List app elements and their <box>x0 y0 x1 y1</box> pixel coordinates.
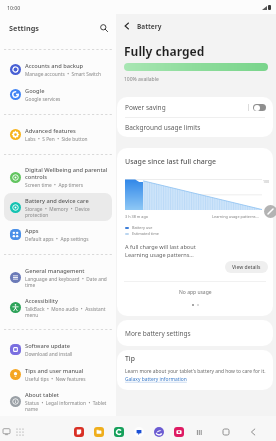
staticText: Battery <box>137 22 162 31</box>
staticText: Google services <box>25 96 61 103</box>
staticText: Software update <box>25 342 71 350</box>
button[interactable]: All apps <box>14 426 25 437</box>
button[interactable]: Background usage limits <box>117 118 273 137</box>
staticText: Useful tips • New features <box>25 376 86 383</box>
button[interactable]: App <box>74 427 84 437</box>
button[interactable]: Google <box>4 83 112 106</box>
staticText: Learning usage patterns... <box>212 214 259 219</box>
staticText: TalkBack • Mono audio • Assistant menu <box>25 306 110 318</box>
button[interactable]: Galaxy battery information <box>125 376 187 383</box>
staticText: Background usage limits <box>125 123 201 132</box>
button[interactable]: Home <box>220 426 232 438</box>
staticText: Storage • Memory • Device protection <box>25 206 110 218</box>
staticText: No app usage <box>179 289 212 296</box>
staticText: Accounts and backup <box>25 62 84 70</box>
staticText: Advanced features <box>25 127 76 135</box>
button[interactable]: App <box>94 427 104 437</box>
staticText: Manage accounts • Smart Switch <box>25 71 101 78</box>
staticText: Language and keyboard • Date and time <box>25 276 110 288</box>
staticText: 100% available <box>124 76 159 83</box>
button[interactable]: Power saving <box>117 97 273 117</box>
staticText: 100 <box>263 179 270 184</box>
staticText: Battery use <box>132 225 153 230</box>
staticText: Battery and device care <box>25 197 89 205</box>
button[interactable]: More battery settings <box>117 320 273 346</box>
button[interactable]: Battery and device care <box>4 193 112 221</box>
staticText: Apps <box>25 227 39 235</box>
staticText: A full charge will last about <box>125 243 196 251</box>
button[interactable]: App <box>154 427 164 437</box>
button[interactable]: View details <box>225 261 268 273</box>
staticText: Google <box>25 87 45 95</box>
button[interactable]: About tablet <box>4 388 112 415</box>
button[interactable]: App <box>174 427 184 437</box>
staticText: 10:00 <box>7 4 21 11</box>
staticText: Learning usage patterns... <box>125 251 194 259</box>
staticText: Settings <box>9 23 39 33</box>
button[interactable]: Digital Wellbeing and parental controls <box>4 163 112 191</box>
staticText: About tablet <box>25 391 59 399</box>
staticText: View details <box>232 264 261 271</box>
staticText: Default apps • App settings <box>25 236 89 243</box>
staticText: Status • Legal information • Tablet name <box>25 400 110 412</box>
staticText: Accessibility <box>25 297 58 305</box>
button[interactable]: General management <box>4 263 112 291</box>
staticText: Usage since last full charge <box>125 157 217 167</box>
staticText: Digital Wellbeing and parental controls <box>25 166 110 181</box>
staticText: 3 h 38 m ago <box>125 214 149 219</box>
button[interactable]: Software update <box>4 338 112 361</box>
staticText: More battery settings <box>125 329 191 338</box>
staticText: Power saving <box>125 103 166 112</box>
button[interactable]: Screenshot <box>1 426 12 437</box>
staticText: Screen time • App timers <box>25 182 84 189</box>
staticText: Labs • S Pen • Side button <box>25 136 88 143</box>
staticText: General management <box>25 267 85 275</box>
button[interactable]: Apps <box>4 223 112 246</box>
staticText: Fully charged <box>124 43 205 59</box>
button[interactable]: Back <box>120 19 134 33</box>
button[interactable]: Search <box>97 21 111 35</box>
staticText: Tip <box>125 354 135 363</box>
button[interactable]: Accounts and backup <box>4 58 112 81</box>
staticText: Tips and user manual <box>25 367 84 375</box>
button[interactable]: Power saving toggle <box>253 104 266 111</box>
staticText: Learn more about your tablet's battery a… <box>125 368 266 375</box>
button[interactable]: Back <box>247 426 259 438</box>
staticText: Download and install <box>25 351 73 358</box>
button[interactable]: App <box>134 427 144 437</box>
button[interactable]: Recents <box>193 426 205 438</box>
staticText: Estimated time <box>132 231 159 236</box>
button[interactable]: Edit <box>264 205 276 218</box>
button[interactable]: Accessibility <box>4 293 112 321</box>
button[interactable]: Advanced features <box>4 123 112 146</box>
button[interactable]: App <box>114 427 124 437</box>
button[interactable]: Tips and user manual <box>4 363 112 386</box>
